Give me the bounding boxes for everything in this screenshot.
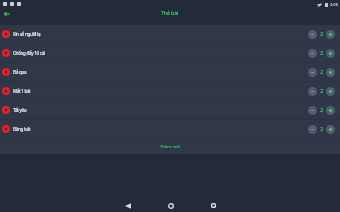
button[interactable]: Tất yêu <box>0 101 340 119</box>
staticText: 3:08 <box>330 2 338 7</box>
staticText: Thêm mới <box>160 144 180 150</box>
button[interactable]: Increase <box>326 68 335 77</box>
button[interactable]: Home <box>165 200 176 211</box>
staticText: 2 <box>320 68 324 76</box>
button[interactable]: Back <box>0 8 13 19</box>
staticText: Băng hát <box>13 126 31 132</box>
button[interactable]: Recents <box>208 200 219 211</box>
staticText: 2 <box>320 87 324 95</box>
button[interactable]: Bỏ qua <box>0 63 340 81</box>
staticText: Thẻ bài <box>161 10 179 17</box>
button[interactable]: Decrease <box>308 49 317 58</box>
button[interactable]: Chống đẩy 10 cái <box>0 44 340 62</box>
staticText: Chống đẩy 10 cái <box>13 50 45 56</box>
button[interactable]: Increase <box>326 49 335 58</box>
staticText: 2 <box>320 125 324 133</box>
button[interactable]: Decrease <box>308 106 317 115</box>
button[interactable]: Decrease <box>308 68 317 77</box>
button[interactable]: Xin số người lạ <box>0 25 340 43</box>
staticText: Tất yêu <box>13 107 27 113</box>
staticText: Bỏ qua <box>13 69 27 75</box>
staticText: Mất 1 bài <box>13 88 31 94</box>
button[interactable]: Increase <box>326 106 335 115</box>
button[interactable]: Increase <box>326 30 335 39</box>
button[interactable]: Decrease <box>308 30 317 39</box>
staticText: Xin số người lạ <box>13 31 41 37</box>
button[interactable]: Decrease <box>308 87 317 96</box>
button[interactable]: Back <box>122 200 133 211</box>
staticText: 2 <box>320 30 324 38</box>
button[interactable]: Băng hát <box>0 120 340 138</box>
staticText: 2 <box>320 49 324 57</box>
staticText: 2 <box>320 106 324 114</box>
button[interactable]: Thêm mới <box>0 139 340 154</box>
button[interactable]: Decrease <box>308 125 317 134</box>
button[interactable]: Mất 1 bài <box>0 82 340 100</box>
button[interactable]: Increase <box>326 125 335 134</box>
button[interactable]: Increase <box>326 87 335 96</box>
